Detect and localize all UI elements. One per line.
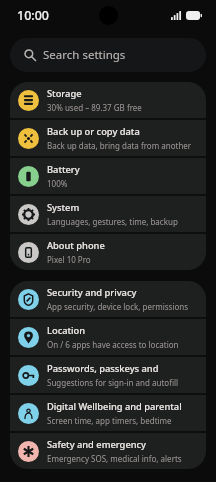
staticText: Emergency SOS, medical info, alerts (47, 453, 182, 464)
button[interactable]: Passwords, passkeys and accounts (10, 357, 206, 393)
button[interactable]: Safety and emergency (10, 433, 206, 469)
other: System (18, 204, 39, 225)
button[interactable]: Back up or copy data (10, 120, 206, 156)
staticText: Languages, gestures, time, backup (47, 216, 178, 227)
staticText: Back up data, bring data from another de… (47, 140, 198, 151)
staticText: Safety and emergency (47, 438, 147, 451)
staticText: Security and privacy (47, 286, 137, 299)
staticText: Battery (47, 163, 80, 176)
staticText: Suggestions for sign-in and autofill (47, 377, 179, 388)
other: Back up or copy data (18, 128, 39, 149)
staticText: Digital Wellbeing and parental controls (47, 400, 198, 413)
staticText: Search settings (43, 47, 126, 63)
staticText: Location (47, 324, 86, 337)
button[interactable]: System (10, 196, 206, 232)
staticText: System (47, 201, 80, 214)
other: Storage (18, 90, 39, 111)
staticText: Passwords, passkeys and accounts (47, 362, 198, 375)
button[interactable]: Location (10, 319, 206, 355)
staticText: Storage (47, 87, 82, 100)
staticText: 100% (47, 178, 68, 189)
staticText: App security, device lock, permissions (47, 301, 189, 312)
staticText: Screen time, app timers, bedtime schedul… (47, 415, 198, 426)
button[interactable]: Storage (10, 82, 206, 118)
other: Passwords, passkeys and accounts (18, 365, 39, 386)
staticText: Back up or copy data (47, 125, 140, 138)
staticText: 10:00 (17, 7, 50, 24)
other: Location (18, 327, 39, 348)
staticText: Pixel 10 Pro (47, 254, 91, 265)
other: Digital Wellbeing and parental controls (18, 403, 39, 424)
button[interactable]: Digital Wellbeing and parental controls (10, 395, 206, 431)
button[interactable]: Security and privacy (10, 281, 206, 317)
button[interactable]: Battery (10, 158, 206, 194)
other: About phone (18, 242, 39, 263)
button[interactable]: About phone (10, 234, 206, 270)
other: Security and privacy (18, 289, 39, 310)
staticText: On / 6 apps have access to location (47, 339, 179, 350)
other: Safety and emergency (18, 441, 39, 462)
staticText: 30% used – 89.37 GB free (47, 102, 142, 113)
staticText: About phone (47, 239, 105, 252)
button[interactable]: Search settings (10, 38, 206, 72)
other: Battery (18, 166, 39, 187)
